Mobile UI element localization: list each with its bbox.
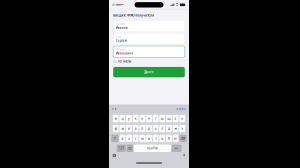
staticText: ц: [121, 116, 123, 121]
staticText: к: [135, 116, 137, 121]
button[interactable]: ⇧: [111, 135, 119, 142]
button[interactable]: д: [166, 125, 172, 132]
button[interactable]: л: [159, 125, 165, 132]
staticText: н: [148, 116, 150, 121]
staticText: 123: [118, 146, 124, 150]
staticText: б: [168, 136, 170, 141]
button[interactable]: й: [113, 115, 119, 122]
staticText: Иванов: [116, 25, 128, 30]
button[interactable]: Нет отчества: [113, 57, 185, 63]
button[interactable]: Готово: [176, 107, 186, 111]
button[interactable]: Previous or next field: [112, 107, 116, 111]
staticText: й: [115, 116, 117, 121]
staticText: о: [155, 126, 157, 131]
staticText: Отчество: [116, 48, 125, 51]
staticText: Фамилия: [116, 22, 125, 25]
staticText: Имя: [116, 35, 121, 38]
button[interactable]: пробел: [134, 145, 171, 152]
staticText: г: [155, 116, 156, 121]
button[interactable]: щ: [166, 115, 172, 122]
staticText: ⌫: [180, 136, 185, 140]
staticText: т: [155, 136, 156, 141]
staticText: д: [168, 126, 170, 131]
staticText: в: [128, 126, 130, 131]
staticText: ы: [121, 126, 123, 131]
staticText: ш: [161, 116, 164, 121]
staticText: ⇧: [113, 136, 116, 140]
button[interactable]: ч: [126, 135, 132, 142]
button[interactable]: ф: [113, 125, 119, 132]
button[interactable]: ж: [173, 125, 178, 132]
button[interactable]: Фамилия: [113, 20, 185, 32]
button[interactable]: о: [153, 125, 158, 132]
button[interactable]: ↵: [172, 145, 181, 152]
button[interactable]: Switch keyboard language: [112, 154, 116, 157]
staticText: ф: [115, 126, 117, 131]
staticText: ч: [128, 136, 130, 141]
staticText: щ: [167, 116, 170, 121]
button[interactable]: т: [153, 135, 158, 142]
button[interactable]: у: [126, 115, 132, 122]
staticText: л: [161, 126, 163, 131]
button[interactable]: в: [126, 125, 132, 132]
staticText: з: [175, 116, 177, 121]
button[interactable]: Отчество: [113, 46, 185, 57]
staticText: э: [181, 126, 183, 131]
staticText: е: [141, 116, 143, 121]
staticText: п: [141, 126, 143, 131]
button[interactable]: ш: [159, 115, 165, 122]
staticText: Иванович: [116, 51, 132, 55]
staticText: и: [148, 136, 150, 141]
button[interactable]: с: [133, 135, 139, 142]
button[interactable]: г: [153, 115, 158, 122]
staticText: р: [148, 126, 150, 131]
staticText: с: [135, 136, 137, 141]
button[interactable]: а: [133, 125, 139, 132]
staticText: я: [121, 136, 123, 141]
staticText: пробел: [147, 146, 158, 150]
button[interactable]: ⌫: [179, 135, 187, 142]
button[interactable]: з: [173, 115, 178, 122]
button[interactable]: Dictation: [183, 154, 186, 157]
button[interactable]: м: [139, 135, 145, 142]
button[interactable]: е: [139, 115, 145, 122]
button[interactable]: ы: [119, 125, 125, 132]
staticText: х: [181, 116, 183, 121]
staticText: а: [135, 126, 137, 131]
button[interactable]: 123: [117, 145, 126, 152]
button[interactable]: и: [146, 135, 152, 142]
button[interactable]: х: [179, 115, 185, 122]
button[interactable]: ю: [173, 135, 178, 142]
staticText: ☺: [128, 146, 131, 150]
button[interactable]: ь: [159, 135, 165, 142]
staticText: ю: [174, 136, 177, 141]
button[interactable]: н: [146, 115, 152, 122]
staticText: ↵: [175, 146, 178, 150]
button[interactable]: к: [133, 115, 139, 122]
staticText: Сергей: [116, 38, 127, 43]
button[interactable]: б: [166, 135, 172, 142]
staticText: ь: [161, 136, 163, 141]
staticText: у: [128, 116, 130, 121]
button[interactable]: р: [146, 125, 152, 132]
staticText: Нет отчества: [118, 60, 131, 63]
staticText: Далее: [144, 70, 154, 74]
staticText: ж: [175, 126, 177, 131]
staticText: Готово: [176, 107, 186, 111]
staticText: Введите ФИО получателя: [113, 13, 154, 17]
staticText: м: [141, 136, 143, 141]
button[interactable]: Имя: [113, 33, 185, 45]
button[interactable]: ц: [119, 115, 125, 122]
button[interactable]: Далее: [113, 67, 185, 77]
button[interactable]: ☺: [126, 145, 133, 152]
button[interactable]: п: [139, 125, 145, 132]
button[interactable]: э: [179, 125, 185, 132]
button[interactable]: я: [119, 135, 125, 142]
